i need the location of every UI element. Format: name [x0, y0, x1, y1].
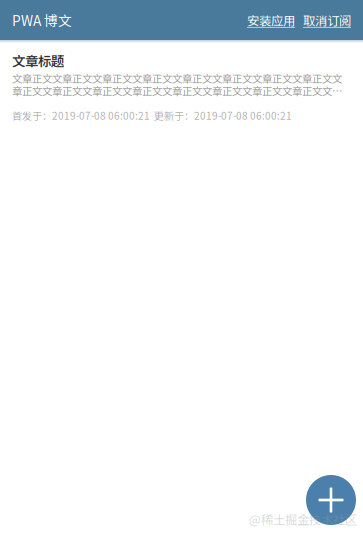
button[interactable]: 取消订阅: [303, 12, 351, 28]
staticText: 文章正文文章正文文章正文文章正文文章正文文章正文文章正文文章正文文章正文文章正文…: [12, 72, 351, 97]
staticText: PWA 博文: [12, 11, 72, 29]
staticText: 取消订阅: [303, 12, 351, 28]
button[interactable]: 安装应用: [247, 12, 295, 28]
staticText: 文章标题: [12, 52, 64, 69]
staticText: 安装应用: [247, 12, 295, 28]
staticText: 首发于：2019-07-08 06:00:21 更新于：2019-07-08 0…: [12, 109, 292, 122]
button[interactable]: 新建文章: [306, 475, 356, 525]
staticText: @稀土掘金技术社区: [249, 511, 357, 527]
